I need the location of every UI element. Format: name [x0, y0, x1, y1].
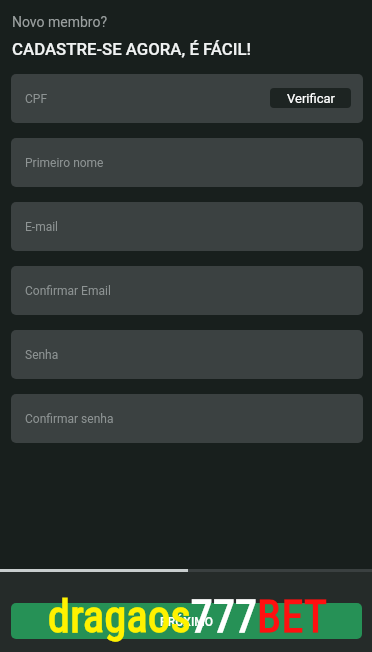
staticText: CPF	[25, 92, 48, 106]
staticText: Primeiro nome	[25, 156, 104, 170]
button[interactable]: CPF	[11, 74, 363, 123]
button[interactable]: Confirmar Email	[11, 266, 363, 315]
staticText: Novo membro?	[12, 14, 108, 30]
staticText: dragaos777BET	[48, 591, 328, 643]
staticText: CADASTRE-SE AGORA, É FÁCIL!	[12, 39, 252, 59]
button[interactable]: Confirmar senha	[11, 394, 363, 443]
button[interactable]: E-mail	[11, 202, 363, 251]
staticText: Senha	[25, 348, 59, 362]
staticText: E-mail	[25, 220, 59, 234]
button[interactable]: PRÓXIMO	[11, 603, 362, 639]
staticText: Confirmar Email	[25, 284, 111, 298]
staticText: Confirmar senha	[25, 412, 114, 426]
button[interactable]: Senha	[11, 330, 363, 379]
staticText: PRÓXIMO	[160, 615, 214, 629]
button[interactable]: Primeiro nome	[11, 138, 363, 187]
staticText: Verificar	[287, 91, 335, 106]
button[interactable]: Verificar	[270, 88, 351, 108]
